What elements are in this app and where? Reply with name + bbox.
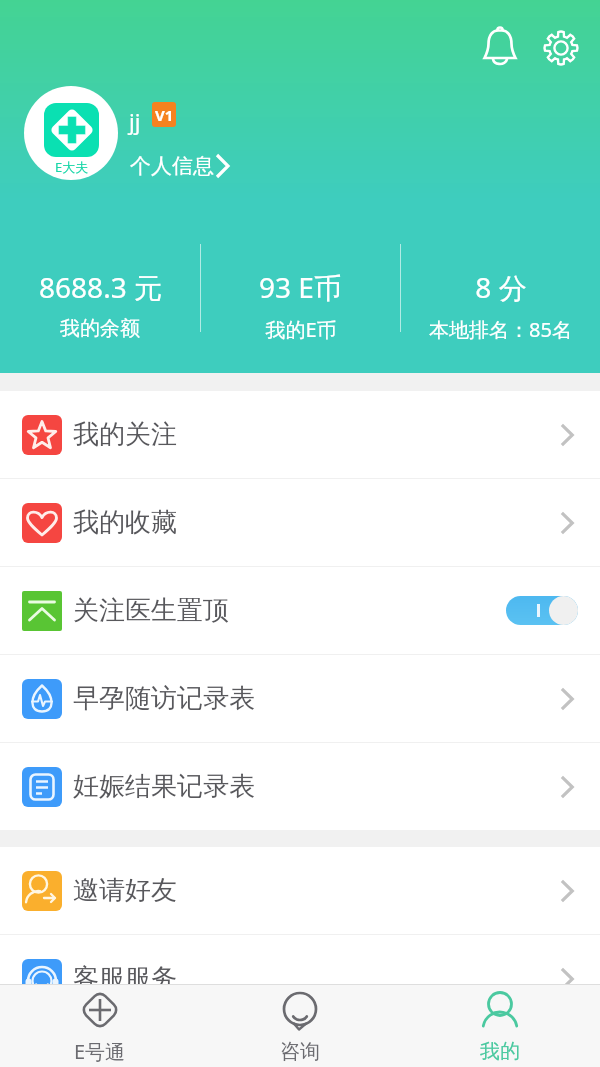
button[interactable]: 咨询 — [200, 985, 400, 1067]
button[interactable]: 93 E币 — [201, 244, 400, 343]
staticText: 邀请好友 — [73, 874, 177, 907]
staticText: 个人信息 — [130, 153, 214, 179]
button[interactable]: 我的关注 — [0, 391, 600, 478]
staticText: 8 分 — [475, 268, 527, 306]
button[interactable]: 关注医生置顶 — [0, 567, 600, 654]
staticText: V1 — [155, 105, 174, 125]
staticText: 8688.3 元 — [39, 268, 162, 306]
staticText: 93 E币 — [259, 268, 342, 306]
staticText: 我的 — [480, 1039, 520, 1064]
staticText: 客服服务 — [73, 962, 177, 995]
staticText: 本地排名：85名 — [429, 316, 572, 343]
staticText: jj — [129, 106, 141, 136]
button[interactable]: Avatar — [24, 86, 118, 180]
staticText: 妊娠结果记录表 — [73, 770, 255, 803]
staticText: 我的关注 — [73, 418, 177, 451]
button[interactable]: Settings — [533, 20, 589, 76]
button[interactable]: 客服服务 — [0, 935, 600, 1022]
button[interactable]: E号通 — [0, 985, 200, 1067]
button[interactable]: 8 分 — [401, 244, 600, 343]
button[interactable]: Notifications — [472, 19, 528, 75]
button[interactable]: 妊娠结果记录表 — [0, 743, 600, 830]
button[interactable]: 8688.3 元 — [0, 244, 200, 341]
staticText: 我的收藏 — [73, 506, 177, 539]
staticText: 关注医生置顶 — [73, 594, 229, 627]
button[interactable]: 我的 — [400, 985, 600, 1067]
staticText: E号通 — [74, 1038, 126, 1065]
button[interactable]: 个人信息 — [130, 153, 230, 179]
button[interactable]: Toggle pinned doctors — [506, 596, 578, 625]
staticText: 早孕随访记录表 — [73, 682, 255, 715]
staticText: 咨询 — [280, 1039, 320, 1064]
button[interactable]: 我的收藏 — [0, 479, 600, 566]
staticText: 我的E币 — [265, 316, 337, 343]
staticText: 我的余额 — [60, 316, 140, 341]
staticText: E大夫 — [55, 158, 89, 176]
button[interactable]: 早孕随访记录表 — [0, 655, 600, 742]
button[interactable]: 邀请好友 — [0, 847, 600, 934]
